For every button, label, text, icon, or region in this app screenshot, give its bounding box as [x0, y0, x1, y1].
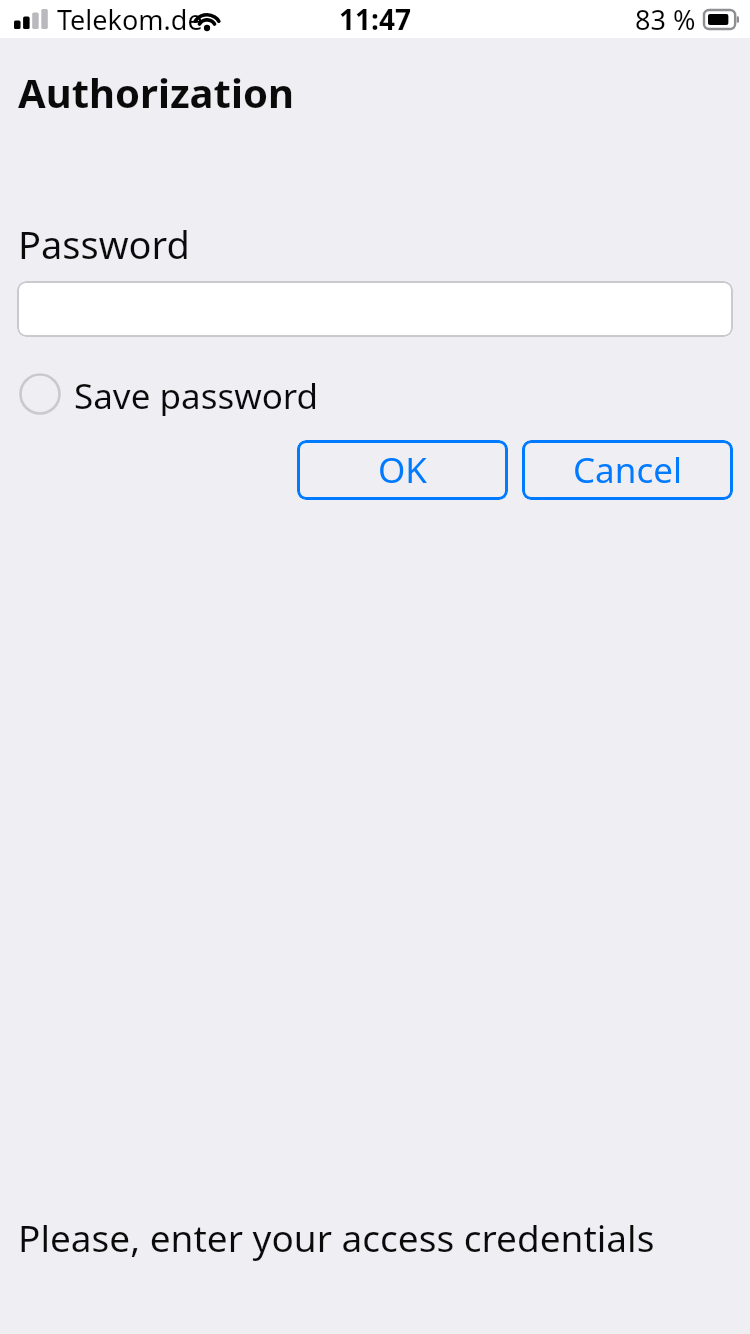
- staticText: Please, enter your access credentials: [18, 1212, 655, 1262]
- button[interactable]: [17, 281, 733, 337]
- staticText: Authorization: [18, 65, 294, 119]
- button[interactable]: Save password: [19, 372, 319, 416]
- staticText: Password: [18, 218, 190, 270]
- staticText: OK: [378, 446, 428, 494]
- staticText: Telekom.de: [57, 1, 203, 38]
- staticText: Cancel: [573, 446, 682, 494]
- button[interactable]: Cancel: [522, 440, 733, 500]
- staticText: 11:47: [339, 0, 411, 38]
- staticText: Save password: [74, 372, 319, 416]
- button[interactable]: OK: [297, 440, 508, 500]
- staticText: 83 %: [635, 1, 696, 38]
